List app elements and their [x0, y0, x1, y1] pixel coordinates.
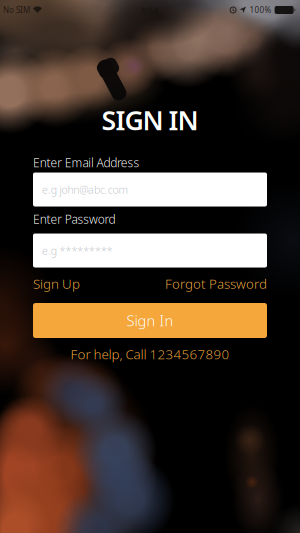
- staticText: Enter Password: [33, 211, 115, 227]
- staticText: Forgot Password: [165, 275, 267, 292]
- staticText: Sign Up: [33, 275, 80, 292]
- button[interactable]: Forgot Password: [165, 275, 267, 292]
- staticText: SIGN IN: [101, 102, 198, 138]
- button[interactable]: Sign In: [33, 303, 267, 338]
- button[interactable]: e.g john@abc.com: [33, 172, 267, 206]
- staticText: 100%: [250, 5, 272, 15]
- button[interactable]: For help, Call 1234567890: [70, 345, 229, 363]
- staticText: e.g john@abc.com: [42, 182, 128, 197]
- button[interactable]: e.g *********: [33, 233, 267, 267]
- staticText: No SIM: [3, 5, 30, 15]
- staticText: For help, Call 1234567890: [70, 345, 229, 363]
- staticText: 3:54: [140, 4, 158, 16]
- staticText: e.g *********: [42, 243, 113, 258]
- staticText: Sign In: [126, 311, 173, 330]
- staticText: Enter Email Address: [33, 154, 139, 170]
- button[interactable]: Sign Up: [33, 275, 80, 292]
